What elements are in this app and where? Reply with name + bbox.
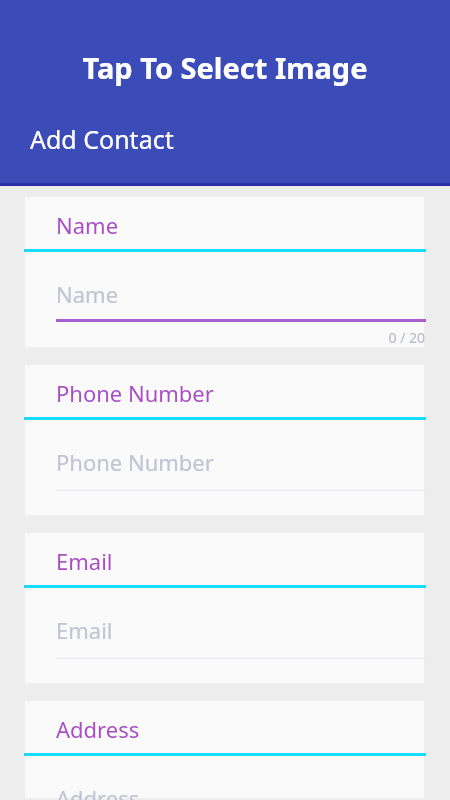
staticText: Address (56, 714, 140, 744)
staticText: Phone Number (56, 447, 214, 477)
staticText: Address (56, 783, 140, 800)
staticText: Phone Number (56, 378, 214, 408)
button[interactable]: Phone Number (24, 364, 426, 517)
staticText: Add Contact (30, 122, 174, 156)
staticText: Name (56, 210, 119, 240)
staticText: Email (56, 615, 113, 645)
button[interactable]: Email (24, 532, 426, 685)
button[interactable]: Tap to select image (0, 0, 450, 183)
button[interactable]: Address (24, 700, 426, 800)
staticText: Name (56, 279, 119, 309)
staticText: Tap To Select Image (0, 48, 450, 87)
staticText: 0 / 20 (24, 328, 425, 347)
button[interactable]: Name (24, 196, 426, 349)
staticText: Email (56, 546, 113, 576)
